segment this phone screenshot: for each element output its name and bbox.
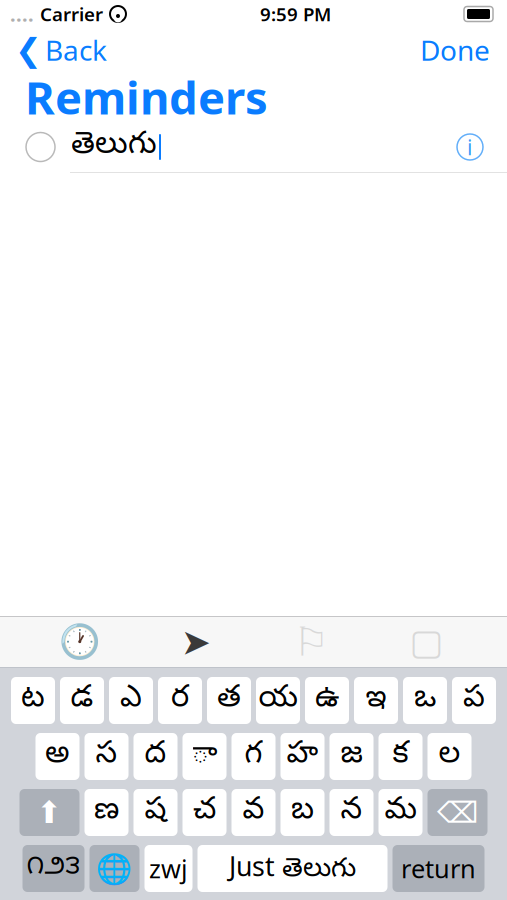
staticText: ❮: [15, 32, 42, 68]
button[interactable]: ఒ: [403, 677, 447, 724]
staticText: Done: [420, 31, 490, 69]
staticText: గ: [244, 736, 262, 777]
button[interactable]: క: [378, 733, 422, 780]
button[interactable]: న: [329, 789, 373, 836]
button[interactable]: మ: [378, 789, 422, 836]
button[interactable]: జ: [329, 733, 373, 780]
button[interactable]: గ: [231, 733, 275, 780]
staticText: zwj: [149, 852, 188, 885]
staticText: న: [340, 792, 362, 833]
button[interactable]: zwj: [144, 845, 192, 892]
staticText: 🌐: [96, 852, 133, 885]
staticText: ఇ: [365, 680, 386, 721]
staticText: Carrier: [40, 2, 103, 26]
staticText: ద: [144, 736, 166, 777]
staticText: ▢: [410, 622, 444, 662]
staticText: జ: [340, 736, 362, 777]
button[interactable]: ప: [452, 677, 496, 724]
button[interactable]: చ: [182, 789, 226, 836]
staticText: 🕐: [59, 623, 101, 661]
staticText: డ: [70, 680, 93, 721]
staticText: క: [392, 736, 408, 777]
staticText: ⚐: [293, 619, 329, 665]
staticText: ణ: [94, 792, 119, 833]
staticText: చ: [193, 792, 216, 833]
button[interactable]: Next keyboard: [89, 845, 139, 892]
button[interactable]: ఎ: [109, 677, 153, 724]
staticText: Back: [45, 31, 107, 69]
button[interactable]: ా: [182, 733, 226, 780]
button[interactable]: ల: [427, 733, 471, 780]
button[interactable]: హ: [280, 733, 324, 780]
button[interactable]: య: [256, 677, 300, 724]
button[interactable]: Details: [443, 122, 497, 172]
staticText: ⌫: [437, 796, 478, 829]
staticText: స: [95, 736, 117, 777]
staticText: ౧౨౩: [26, 851, 80, 886]
staticText: హ: [286, 736, 318, 777]
button[interactable]: return: [392, 845, 484, 892]
button[interactable]: Shift: [19, 789, 79, 836]
button[interactable]: ణ: [84, 789, 128, 836]
staticText: అ: [45, 736, 70, 777]
button[interactable]: Flag: [276, 617, 346, 667]
button[interactable]: బ: [280, 789, 324, 836]
staticText: ఒ: [414, 680, 436, 721]
button[interactable]: ఇ: [354, 677, 398, 724]
button[interactable]: స: [84, 733, 128, 780]
button[interactable]: ట: [11, 677, 55, 724]
staticText: య: [258, 680, 297, 721]
staticText: Reminders: [25, 67, 268, 127]
button[interactable]: వ: [231, 789, 275, 836]
staticText: ా: [191, 736, 217, 777]
button[interactable]: Done: [403, 28, 507, 72]
button[interactable]: అ: [35, 733, 79, 780]
button[interactable]: డ: [60, 677, 104, 724]
button[interactable]: Remind me at a location: [161, 617, 231, 667]
staticText: ప: [463, 680, 485, 721]
button[interactable]: త: [207, 677, 251, 724]
button[interactable]: ష: [133, 789, 177, 836]
staticText: Just తెలుగు: [229, 848, 356, 889]
staticText: వ: [242, 792, 264, 833]
button[interactable]: Remind me at a time: [45, 617, 115, 667]
staticText: ➤: [181, 622, 211, 662]
staticText: బ: [291, 792, 314, 833]
button[interactable]: ద: [133, 733, 177, 780]
button[interactable]: ర: [158, 677, 202, 724]
staticText: ⬆: [36, 795, 62, 830]
button[interactable]: ఉ: [305, 677, 349, 724]
button[interactable]: Delete: [427, 789, 487, 836]
button[interactable]: ❮: [0, 28, 122, 72]
staticText: ట: [21, 680, 45, 721]
staticText: ల: [438, 736, 460, 777]
staticText: త: [217, 680, 241, 721]
button[interactable]: Add photo: [392, 617, 462, 667]
staticText: ఎ: [120, 680, 142, 721]
button[interactable]: Just తెలుగు: [197, 845, 387, 892]
staticText: i: [467, 133, 473, 161]
button[interactable]: ౧౨౩: [22, 845, 84, 892]
staticText: return: [401, 852, 476, 885]
staticText: మ: [384, 792, 416, 833]
staticText: తెలుగు: [71, 127, 157, 167]
staticText: ర: [171, 680, 189, 721]
staticText: 9:59 PM: [260, 2, 331, 26]
staticText: ....: [10, 1, 34, 27]
staticText: ఉ: [315, 680, 339, 721]
staticText: ష: [144, 792, 166, 833]
